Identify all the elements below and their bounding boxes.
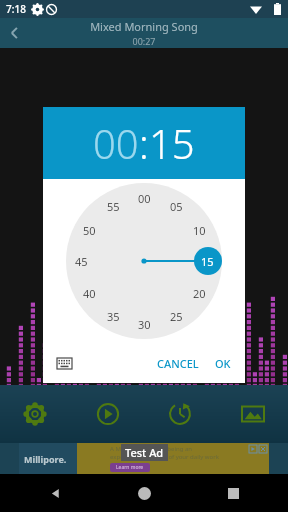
button[interactable]: 15 — [149, 116, 195, 170]
button[interactable]: 40 — [79, 283, 99, 303]
staticText: Test Ad — [125, 445, 164, 460]
button[interactable]: 50 — [79, 220, 99, 240]
staticText: 00 — [138, 191, 151, 206]
staticText: A Millipore expert is being an — [110, 445, 193, 453]
button[interactable]: 45 — [71, 251, 91, 271]
button[interactable]: Switch to keyboard input — [51, 350, 77, 376]
staticText: 35 — [107, 309, 120, 324]
staticText: 00:27 — [132, 35, 156, 47]
button[interactable]: Settings — [18, 397, 52, 431]
staticText: 30 — [138, 317, 151, 332]
button[interactable]: Timer — [163, 397, 197, 431]
staticText: CANCEL — [157, 356, 199, 371]
button[interactable]: 30 — [134, 314, 154, 334]
staticText: 55 — [107, 199, 120, 214]
button[interactable]: 20 — [189, 283, 209, 303]
button[interactable]: Millipore. — [19, 443, 269, 474]
button[interactable]: 00 — [93, 116, 139, 170]
staticText: Millipore. — [24, 453, 67, 465]
button[interactable]: Back — [40, 478, 70, 508]
staticText: 00 — [93, 116, 139, 170]
staticText: Learn more — [116, 464, 144, 471]
button[interactable]: OK — [207, 348, 245, 379]
button[interactable]: 25 — [166, 306, 186, 326]
staticText: OK — [215, 356, 231, 371]
button[interactable]: Play — [91, 397, 125, 431]
staticText: 25 — [170, 309, 183, 324]
staticText: Mixed Morning Song — [90, 19, 198, 34]
button[interactable]: 00 — [134, 188, 154, 208]
staticText: 15 — [149, 116, 195, 170]
staticText: 20 — [193, 286, 206, 301]
staticText: : — [139, 116, 149, 170]
button[interactable]: Recents — [218, 478, 248, 508]
staticText: 05 — [170, 199, 183, 214]
staticText: 15 — [201, 254, 214, 269]
button[interactable]: 35 — [103, 306, 123, 326]
staticText: expert in the middle of your daily work — [110, 453, 219, 461]
button[interactable]: 15 — [197, 251, 217, 271]
button[interactable]: Home — [129, 478, 159, 508]
staticText: 7:18 — [6, 2, 26, 16]
button[interactable]: Image — [236, 397, 270, 431]
button[interactable]: 10 — [189, 220, 209, 240]
staticText: 40 — [83, 286, 96, 301]
button[interactable]: Back — [0, 18, 30, 48]
staticText: 50 — [83, 223, 96, 238]
button[interactable]: 55 — [103, 196, 123, 216]
button[interactable]: CANCEL — [149, 348, 207, 379]
button[interactable]: 05 — [166, 196, 186, 216]
staticText: 10 — [193, 223, 206, 238]
staticText: 45 — [75, 254, 88, 269]
